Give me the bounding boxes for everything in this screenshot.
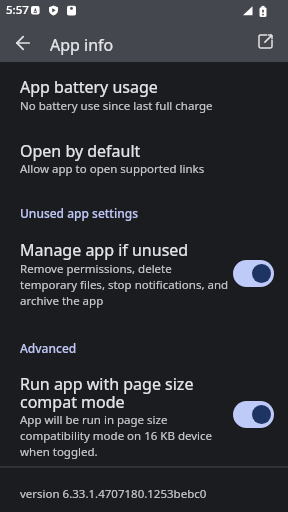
button[interactable]	[7, 27, 38, 58]
staticText: Remove permissions, delete temporary fil…	[20, 261, 229, 309]
staticText: Advanced	[20, 340, 77, 356]
staticText: Allow app to open supported links	[20, 161, 205, 177]
staticText: Unused app settings	[20, 205, 138, 221]
staticText: version 6.33.1.4707180.1253bebc0	[20, 486, 207, 502]
button[interactable]	[0, 134, 288, 186]
staticText: App battery usage	[20, 76, 158, 98]
button[interactable]	[250, 26, 280, 56]
staticText: App will be run in page size compatibili…	[20, 412, 213, 460]
button[interactable]	[233, 401, 274, 428]
button[interactable]	[233, 260, 274, 287]
staticText: App info	[50, 34, 114, 56]
button[interactable]	[0, 70, 288, 122]
staticText: Open by default	[20, 140, 141, 162]
button[interactable]	[0, 236, 288, 312]
staticText: Run app with page size compat mode	[20, 373, 194, 413]
staticText: Manage app if unused	[20, 239, 189, 261]
staticText: 5:57	[6, 2, 29, 18]
staticText: No battery use since last full charge	[20, 98, 213, 114]
button[interactable]	[0, 370, 288, 462]
